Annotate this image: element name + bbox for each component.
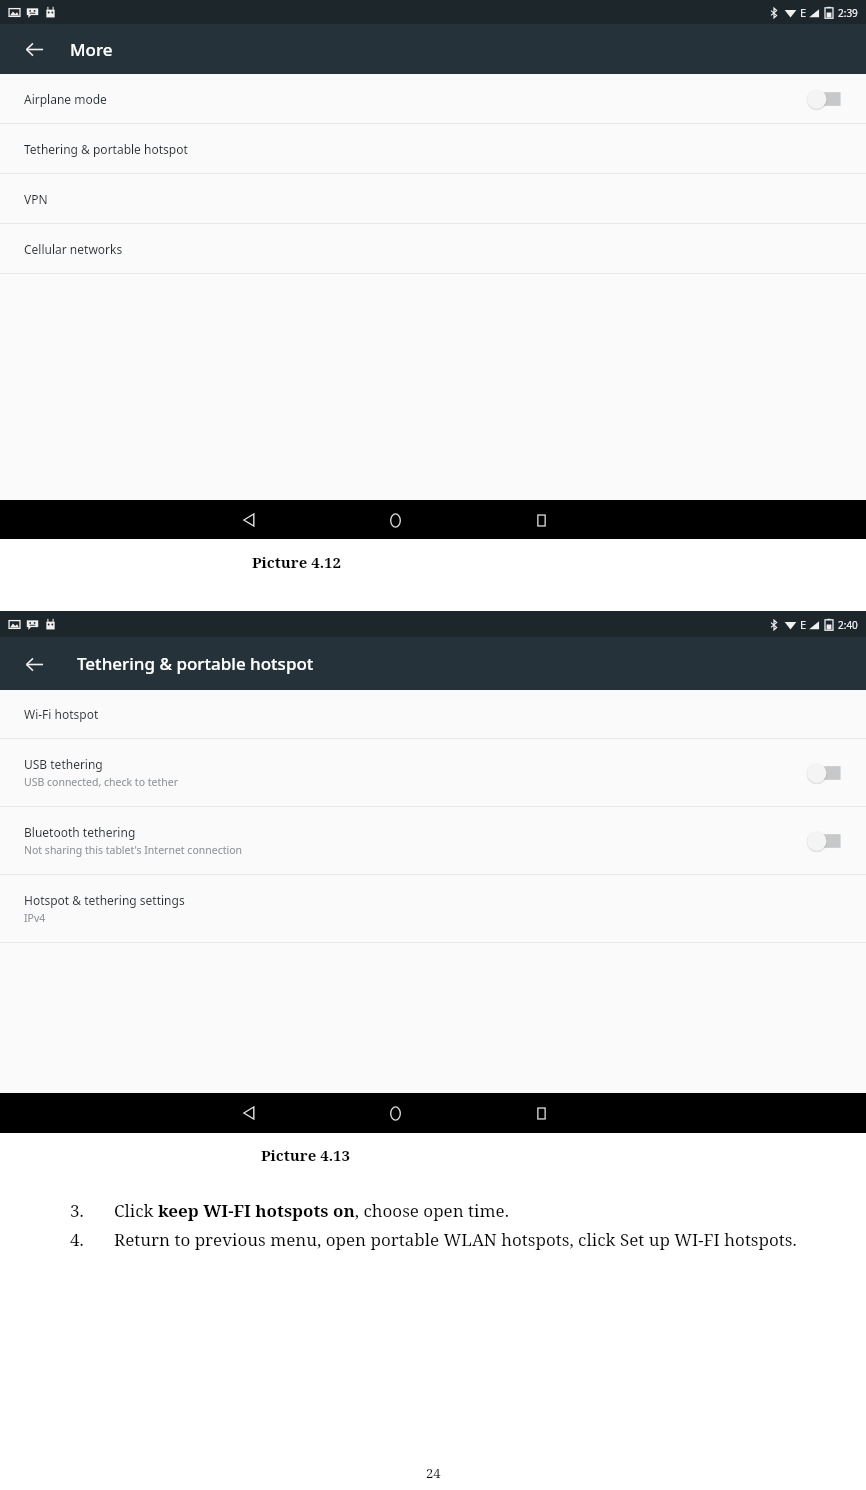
staticText: VPN <box>24 191 48 207</box>
staticText: 3. <box>70 1199 114 1222</box>
button[interactable]: Back <box>231 1095 267 1131</box>
staticText: USB connected, check to tether <box>24 775 178 789</box>
button[interactable]: Hotspot & tethering settings <box>0 875 866 942</box>
button[interactable]: VPN <box>0 174 866 223</box>
staticText: 2:40 <box>838 618 858 632</box>
staticText: More <box>70 38 113 61</box>
staticText: Cellular networks <box>24 241 123 257</box>
staticText: 2:39 <box>838 6 858 20</box>
button[interactable]: Cellular networks <box>0 224 866 273</box>
staticText: Picture 4.13 <box>261 1145 350 1165</box>
button[interactable]: Home <box>377 1095 413 1131</box>
staticText: USB tethering <box>24 756 103 772</box>
staticText: Bluetooth tethering <box>24 824 136 840</box>
staticText: IPv4 <box>24 911 46 925</box>
button[interactable]: Airplane mode <box>0 74 866 123</box>
button[interactable]: Tethering & portable hotspot <box>0 124 866 173</box>
staticText: 24 <box>426 1464 441 1482</box>
button[interactable]: Wi-Fi hotspot <box>0 690 866 738</box>
staticText: Not sharing this tablet's Internet conne… <box>24 843 243 857</box>
button[interactable]: Bluetooth tethering <box>0 807 866 874</box>
staticText: Picture 4.12 <box>252 552 341 572</box>
staticText: Return to previous menu, open portable W… <box>114 1228 797 1251</box>
button[interactable]: Back <box>231 502 267 538</box>
staticText: E <box>800 617 807 632</box>
staticText: Hotspot & tethering settings <box>24 892 185 908</box>
button[interactable]: USB tethering <box>0 739 866 806</box>
button[interactable]: Recent apps <box>523 1095 559 1131</box>
staticText: Tethering & portable hotspot <box>24 141 188 157</box>
button[interactable]: Back <box>18 648 50 680</box>
button[interactable]: Back <box>18 33 50 65</box>
staticText: Tethering & portable hotspot <box>77 652 314 675</box>
staticText: Click keep WI-FI hotspots on, choose ope… <box>114 1199 509 1222</box>
staticText: Airplane mode <box>24 91 107 107</box>
staticText: Wi-Fi hotspot <box>24 706 99 722</box>
staticText: E <box>800 5 807 20</box>
button[interactable]: Recent apps <box>523 502 559 538</box>
button[interactable]: Home <box>377 502 413 538</box>
staticText: 4. <box>70 1228 114 1251</box>
